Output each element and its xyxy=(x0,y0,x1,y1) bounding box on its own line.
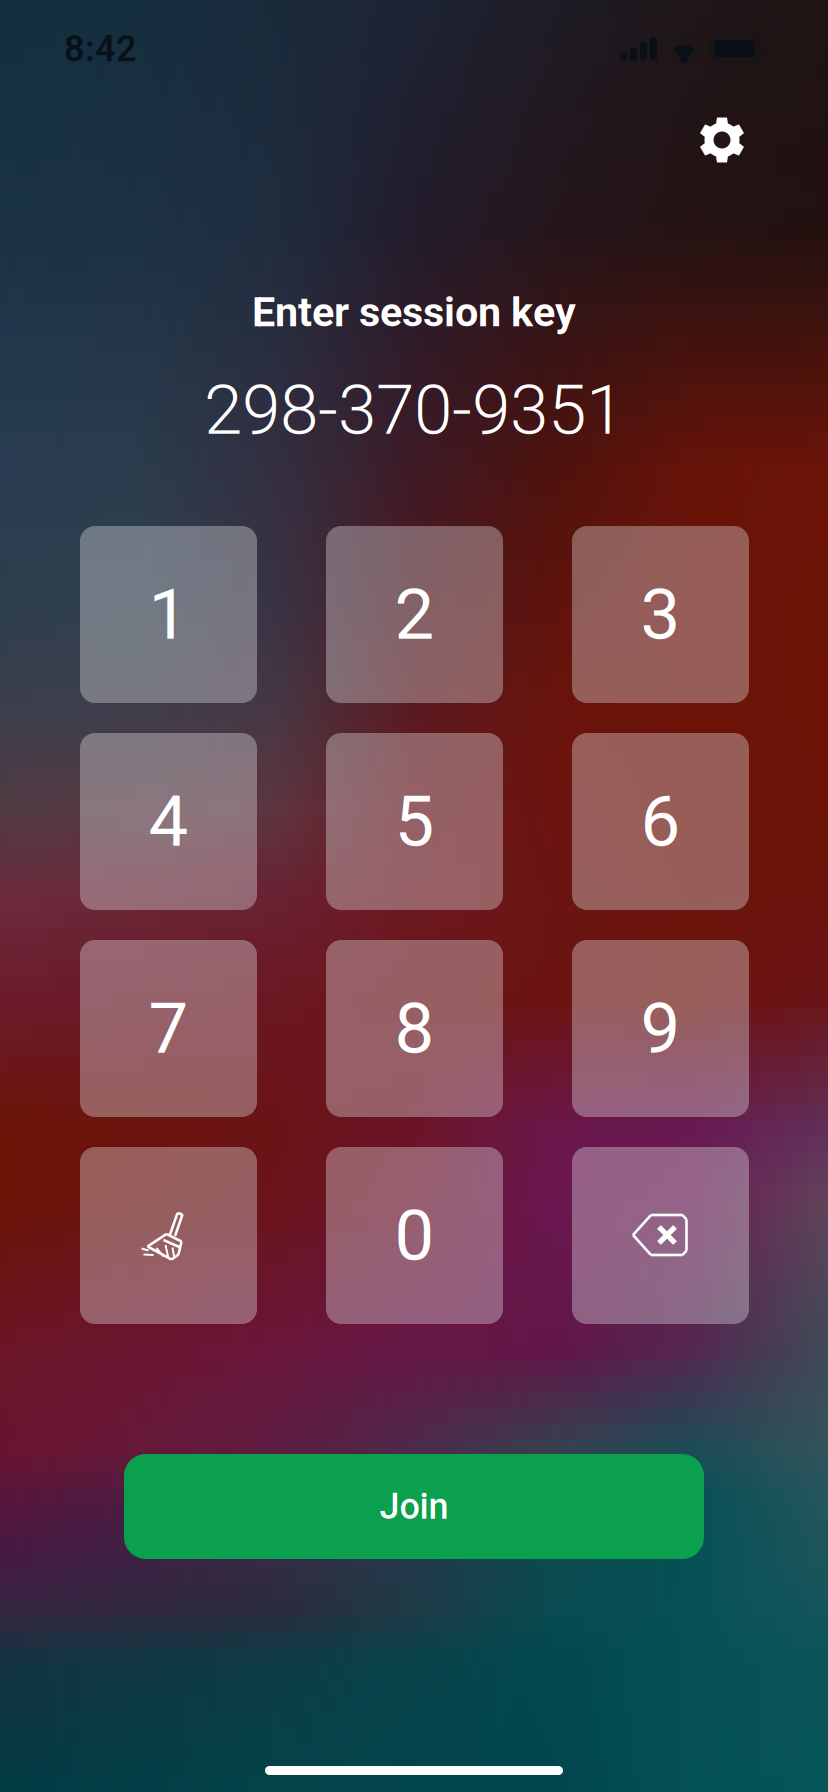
staticText: 4 xyxy=(148,780,188,863)
staticText: 5 xyxy=(394,780,434,863)
button[interactable]: 4 xyxy=(80,733,257,910)
button[interactable]: 8 xyxy=(326,940,503,1117)
staticText: Enter session key xyxy=(252,288,576,336)
staticText: 0 xyxy=(394,1194,434,1277)
button[interactable]: Settings xyxy=(684,102,760,178)
button[interactable]: 7 xyxy=(80,940,257,1117)
button[interactable]: Join xyxy=(124,1454,704,1559)
staticText: 6 xyxy=(640,780,680,863)
staticText: 3 xyxy=(640,573,680,656)
button[interactable] xyxy=(572,1147,749,1324)
staticText: 8 xyxy=(394,987,434,1070)
staticText: 2 xyxy=(394,573,434,656)
button[interactable] xyxy=(80,1147,257,1324)
staticText: 8:42 xyxy=(64,28,137,70)
button[interactable]: 3 xyxy=(572,526,749,703)
button[interactable]: 9 xyxy=(572,940,749,1117)
staticText: 7 xyxy=(148,987,188,1070)
button[interactable]: 5 xyxy=(326,733,503,910)
staticText: Join xyxy=(379,1485,448,1528)
button[interactable]: 0 xyxy=(326,1147,503,1324)
button[interactable]: 1 xyxy=(80,526,257,703)
staticText: 9 xyxy=(640,987,680,1070)
button[interactable]: 2 xyxy=(326,526,503,703)
staticText: 298-370-9351 xyxy=(204,369,624,451)
button[interactable]: 6 xyxy=(572,733,749,910)
staticText: 1 xyxy=(148,573,188,656)
